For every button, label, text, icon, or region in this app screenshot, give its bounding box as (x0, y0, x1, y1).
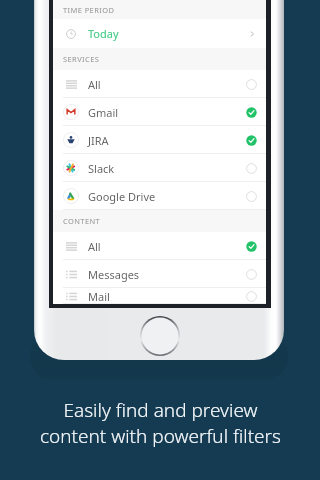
staticText: Easily find and preview content with pow… (40, 397, 281, 448)
staticText: CONTENT (63, 216, 101, 226)
staticText: Gmail (88, 105, 119, 120)
button[interactable]: Gmail (53, 98, 266, 126)
staticText: Google Drive (88, 189, 156, 204)
button[interactable]: Today (53, 19, 266, 48)
button[interactable]: Messages (53, 260, 266, 288)
button[interactable]: Slack (53, 154, 266, 182)
staticText: JIRA (88, 133, 109, 148)
staticText: Slack (88, 161, 115, 176)
staticText: Mail (88, 289, 110, 304)
staticText: All (88, 77, 101, 92)
button[interactable]: JIRA (53, 126, 266, 154)
button[interactable]: Mail (53, 288, 266, 304)
other: Open (247, 29, 257, 39)
button[interactable]: All (53, 232, 266, 260)
staticText: Today (88, 26, 119, 41)
staticText: TIME PERIOD (63, 5, 115, 15)
staticText: All (88, 239, 101, 254)
button[interactable]: Google Drive (53, 182, 266, 210)
staticText: Messages (88, 267, 140, 282)
staticText: SERVICES (63, 54, 100, 64)
button[interactable]: All (53, 70, 266, 98)
